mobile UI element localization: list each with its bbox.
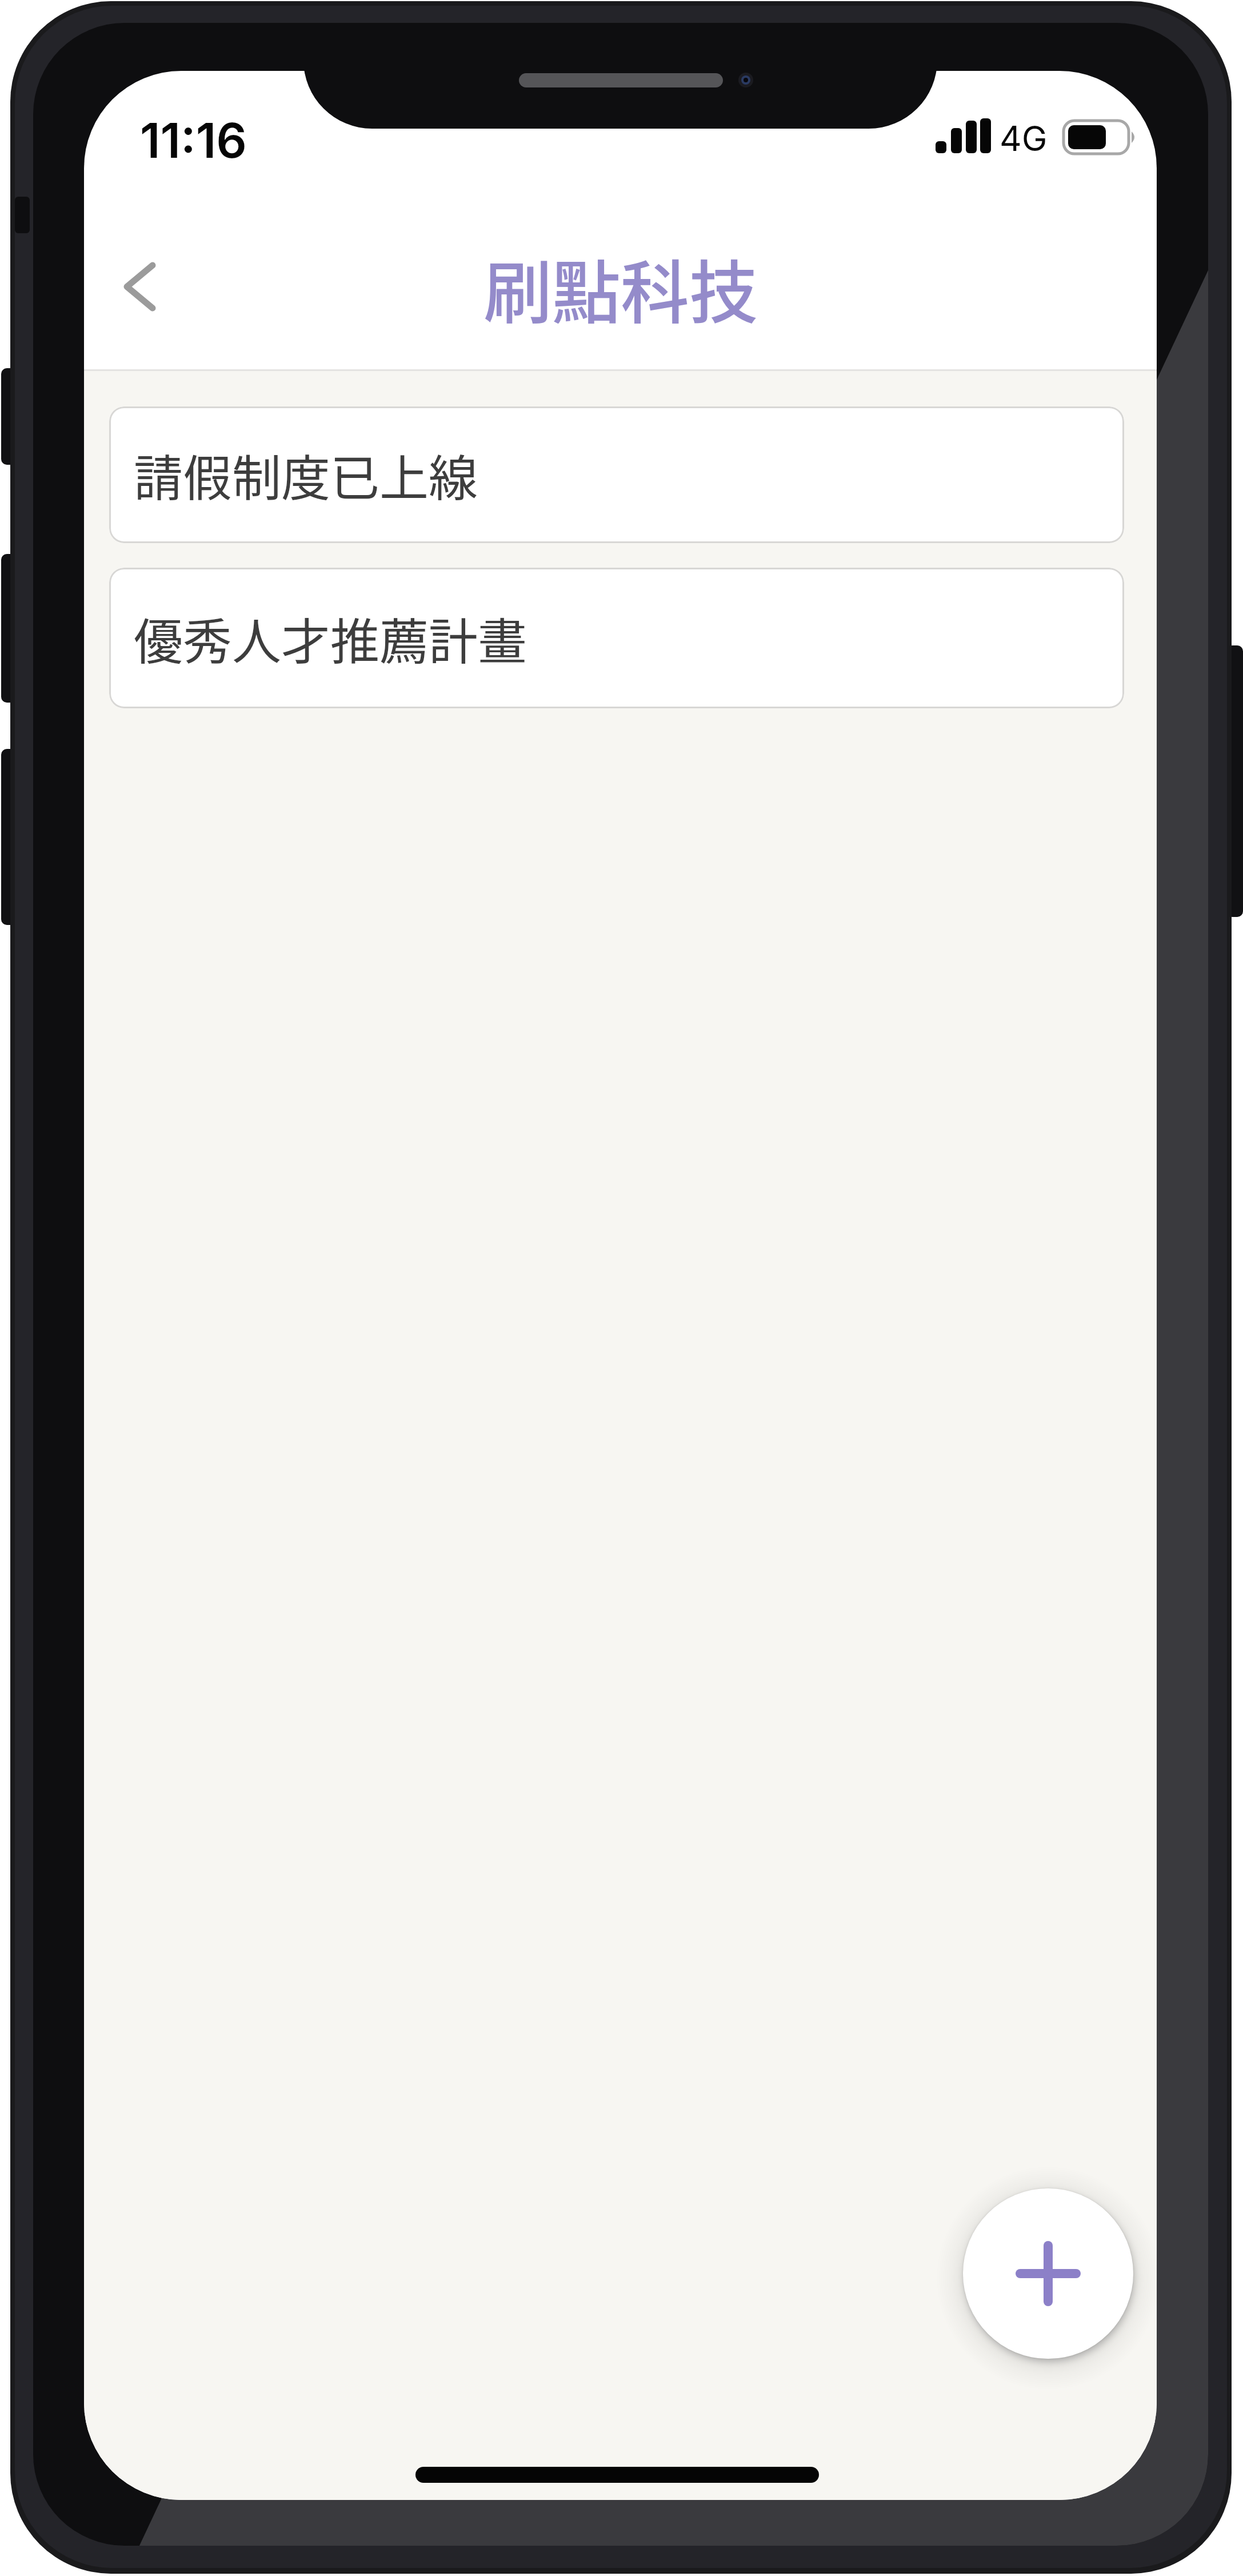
staticText: 刷點科技 <box>483 238 758 336</box>
button[interactable] <box>963 2188 1133 2359</box>
button[interactable] <box>101 248 181 328</box>
staticText: 優秀人才推薦計畫 <box>134 603 527 674</box>
staticText: 請假制度已上線 <box>134 439 478 511</box>
staticText: 4G <box>1000 118 1048 159</box>
staticText: 11:16 <box>140 111 247 170</box>
button[interactable]: 優秀人才推薦計畫 <box>109 568 1124 708</box>
button[interactable]: 請假制度已上線 <box>109 406 1124 543</box>
